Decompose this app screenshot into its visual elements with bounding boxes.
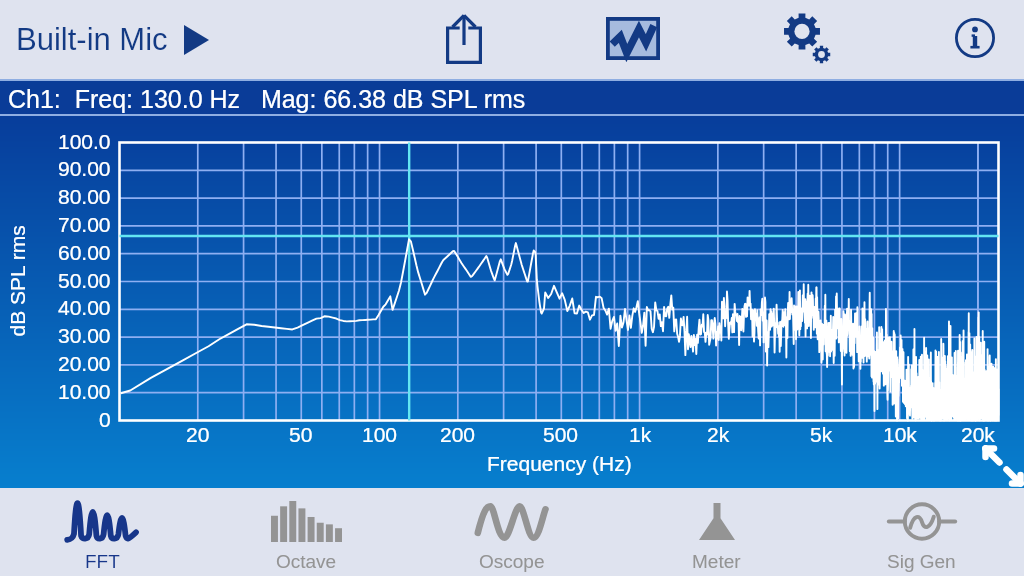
staticText: 50.00: [58, 269, 111, 292]
staticText: 20.00: [58, 352, 111, 375]
staticText: 100.0: [58, 130, 111, 153]
button[interactable]: Oscope: [409, 488, 614, 576]
staticText: 0: [99, 408, 111, 431]
staticText: Ch1: Freq: 130.0 Hz Mag: 66.38 dB SPL rm…: [8, 85, 526, 113]
staticText: 200: [440, 423, 476, 446]
staticText: 30.00: [58, 324, 111, 347]
staticText: 500: [543, 423, 579, 446]
staticText: Frequency (Hz): [487, 452, 632, 475]
staticText: Sig Gen: [887, 551, 956, 572]
staticText: Oscope: [479, 551, 545, 572]
button[interactable]: Built-in Mic: [16, 14, 219, 65]
staticText: 10.00: [58, 380, 111, 403]
staticText: 20: [186, 423, 210, 446]
button[interactable]: FFT: [0, 488, 204, 576]
button[interactable]: Meter: [614, 488, 819, 576]
staticText: 80.00: [58, 185, 111, 208]
staticText: 60.00: [58, 241, 111, 264]
button[interactable]: Octave: [204, 488, 409, 576]
staticText: 100: [362, 423, 398, 446]
staticText: 70.00: [58, 213, 111, 236]
staticText: 40.00: [58, 296, 111, 319]
staticText: 5k: [810, 423, 833, 446]
staticText: 1k: [629, 423, 652, 446]
staticText: 50: [289, 423, 313, 446]
staticText: FFT: [85, 551, 120, 572]
staticText: 10k: [883, 423, 917, 446]
button[interactable]: Sig Gen: [819, 488, 1024, 576]
staticText: Octave: [276, 551, 337, 572]
button[interactable]: Share: [430, 5, 498, 73]
staticText: 20k: [961, 423, 995, 446]
button[interactable]: Info: [941, 4, 1009, 72]
staticText: 90.00: [58, 157, 111, 180]
staticText: Meter: [692, 551, 741, 572]
staticText: dB SPL rms: [5, 224, 28, 336]
button[interactable]: Settings: [773, 5, 841, 73]
staticText: 2k: [707, 423, 730, 446]
staticText: Built-in Mic: [16, 22, 168, 57]
button[interactable]: Chart: [599, 4, 667, 72]
